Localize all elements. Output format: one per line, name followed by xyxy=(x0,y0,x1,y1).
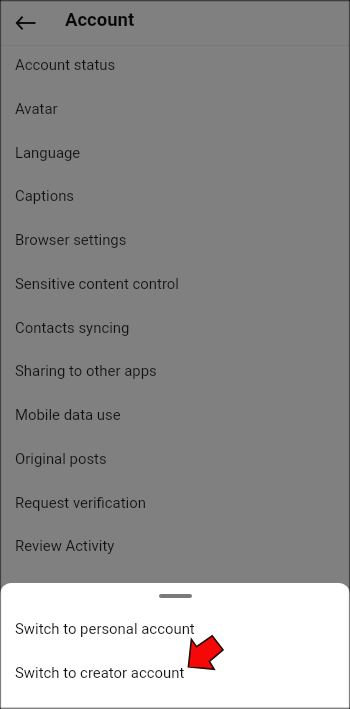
staticText: Original posts xyxy=(15,450,107,467)
button[interactable]: Review Activity xyxy=(0,523,350,567)
button[interactable]: Request verification xyxy=(0,480,350,524)
staticText: Avatar xyxy=(15,100,58,117)
staticText: Request verification xyxy=(15,494,146,511)
button[interactable]: Sensitive content control xyxy=(0,261,350,305)
staticText: Contacts syncing xyxy=(15,319,130,336)
staticText: Account xyxy=(65,9,135,31)
staticText: Language xyxy=(15,144,81,161)
button[interactable]: Switch to personal account xyxy=(0,606,350,650)
button[interactable]: Switch to creator account xyxy=(0,650,350,694)
staticText: Sensitive content control xyxy=(15,275,179,292)
button[interactable]: Avatar xyxy=(0,86,350,130)
staticText: Mobile data use xyxy=(15,406,121,423)
button[interactable]: Captions xyxy=(0,173,350,217)
staticText: Switch to personal account xyxy=(15,620,195,637)
staticText: Captions xyxy=(15,187,75,204)
staticText: Account status xyxy=(15,56,116,73)
staticText: Browser settings xyxy=(15,231,127,248)
staticText: Switch to creator account xyxy=(15,664,185,681)
button[interactable]: Original posts xyxy=(0,436,350,480)
staticText: Sharing to other apps xyxy=(15,362,157,379)
button[interactable]: Sharing to other apps xyxy=(0,348,350,392)
button[interactable]: Mobile data use xyxy=(0,392,350,436)
staticText: Review Activity xyxy=(15,537,115,554)
button[interactable]: Browser settings xyxy=(0,217,350,261)
button[interactable]: Language xyxy=(0,130,350,174)
button[interactable]: Contacts syncing xyxy=(0,305,350,349)
button[interactable]: Account status xyxy=(0,42,350,86)
button[interactable]: Back xyxy=(10,7,41,38)
